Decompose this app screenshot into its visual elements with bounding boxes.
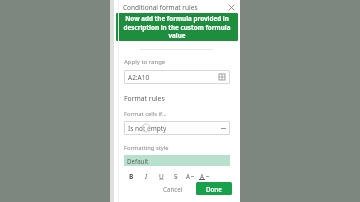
staticText: Is not empty	[128, 124, 167, 133]
staticText: Done	[206, 185, 222, 193]
staticText: Format rules	[124, 94, 165, 103]
staticText: Apply to range	[124, 58, 166, 66]
staticText: Default	[127, 157, 149, 165]
button[interactable]: Default	[124, 155, 230, 166]
button[interactable]: Select data range	[218, 73, 226, 81]
staticText: A2:A10	[128, 73, 150, 82]
staticText: S	[174, 172, 178, 181]
button[interactable]: Underline	[156, 171, 166, 181]
button[interactable]: A2:A10	[124, 70, 230, 84]
staticText: A	[186, 172, 190, 180]
staticText: Cancel	[163, 185, 183, 193]
staticText: A	[200, 172, 204, 180]
button[interactable]: Cancel	[155, 182, 191, 195]
staticText: Conditional format rules	[123, 3, 198, 12]
button[interactable]: Italic	[141, 171, 151, 181]
staticText: I	[145, 172, 148, 181]
button[interactable]: Text color	[186, 171, 194, 181]
button[interactable]: Fill color	[199, 171, 209, 181]
staticText: U	[159, 172, 164, 181]
staticText: Formatting style	[124, 144, 169, 152]
staticText: Format cells if...	[124, 110, 167, 118]
button[interactable]: Bold	[126, 171, 136, 181]
button[interactable]: Is not empty	[124, 121, 230, 135]
button[interactable]: Close	[226, 2, 236, 12]
staticText: B	[129, 172, 134, 181]
staticText: Now add the formula provided in descript…	[118, 14, 236, 40]
button[interactable]: Strikethrough	[171, 171, 181, 181]
button[interactable]: Done	[196, 182, 232, 195]
